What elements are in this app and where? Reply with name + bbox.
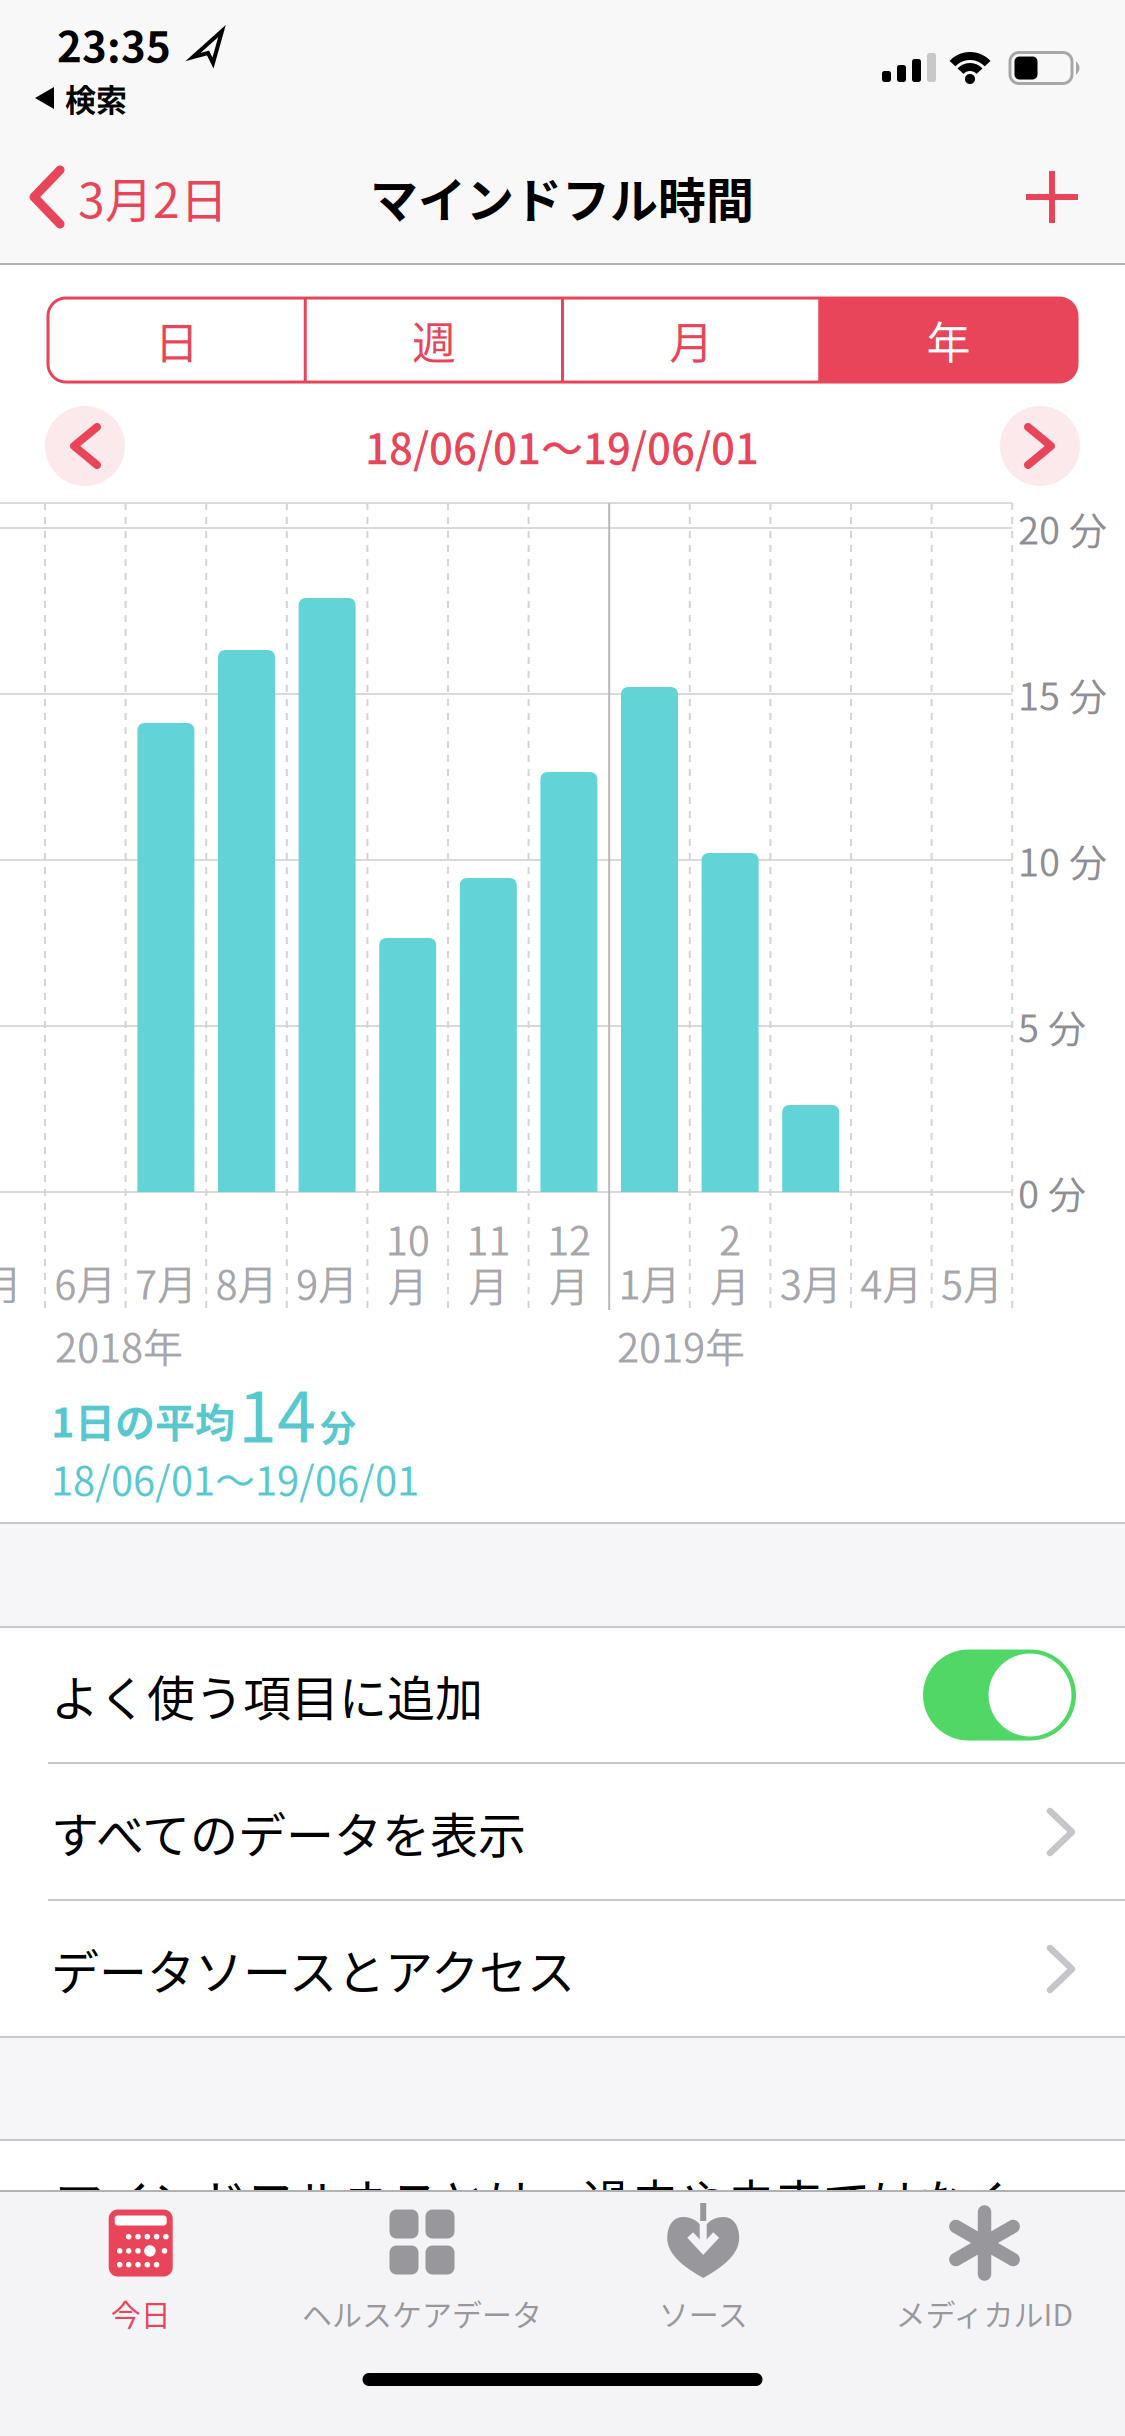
staticText: 11 bbox=[466, 1209, 510, 1267]
button[interactable]: ソース bbox=[563, 2190, 844, 2342]
staticText: 2 bbox=[719, 1209, 741, 1267]
staticText: 月 bbox=[388, 1255, 428, 1313]
button[interactable]: 検索 bbox=[30, 84, 130, 118]
staticText: 週 bbox=[412, 308, 456, 372]
button[interactable] bbox=[45, 406, 125, 486]
staticText: 7月 bbox=[135, 1253, 197, 1311]
staticText: ソース bbox=[659, 2291, 748, 2335]
staticText: 検索 bbox=[65, 76, 127, 120]
button[interactable] bbox=[1000, 406, 1080, 486]
staticText: 月 bbox=[549, 1255, 589, 1313]
staticText: 今日 bbox=[111, 2291, 171, 2335]
staticText: 12 bbox=[547, 1209, 591, 1267]
staticText: よく使う項目に追加 bbox=[51, 1660, 483, 1730]
staticText: 0 分 bbox=[1018, 1164, 1086, 1219]
staticText: 2018年 bbox=[55, 1316, 183, 1374]
staticText: 年 bbox=[926, 308, 970, 372]
staticText: 月 bbox=[468, 1255, 508, 1313]
staticText: 月 bbox=[710, 1255, 750, 1313]
staticText: 3月 bbox=[780, 1253, 842, 1311]
staticText: 8月 bbox=[215, 1253, 277, 1311]
staticText: すべてのデータを表示 bbox=[51, 1797, 526, 1867]
staticText: 1月 bbox=[618, 1253, 680, 1311]
staticText: データソースとアクセス bbox=[51, 1934, 575, 2004]
staticText: 18/06/01〜19/06/01 bbox=[365, 416, 759, 476]
staticText: 9月 bbox=[296, 1253, 358, 1311]
staticText: 3月2日 bbox=[78, 162, 228, 232]
staticText: 5 分 bbox=[1018, 998, 1086, 1053]
button[interactable]: メディカルID bbox=[844, 2190, 1125, 2342]
staticText: ヘルスケアデータ bbox=[302, 2291, 542, 2335]
staticText: メディカルID bbox=[895, 2291, 1073, 2335]
button[interactable]: 今日 bbox=[0, 2190, 281, 2342]
staticText: 6月 bbox=[54, 1253, 116, 1311]
staticText: 月 bbox=[0, 1253, 22, 1311]
staticText: 4月 bbox=[860, 1253, 922, 1311]
staticText: 月 bbox=[669, 308, 713, 372]
staticText: マインドフルネスとは、過去や未来ではなく bbox=[55, 2164, 1015, 2234]
staticText: 15 分 bbox=[1018, 666, 1107, 721]
staticText: 20 分 bbox=[1018, 500, 1107, 555]
button[interactable] bbox=[923, 1649, 1076, 1740]
button[interactable]: 3月2日 bbox=[24, 167, 244, 229]
button[interactable]: 年 bbox=[820, 298, 1077, 382]
staticText: 2019年 bbox=[617, 1316, 745, 1374]
staticText: マインドフル時間 bbox=[370, 162, 754, 232]
button[interactable] bbox=[1026, 171, 1078, 223]
button[interactable]: ヘルスケアデータ bbox=[281, 2190, 562, 2342]
staticText: 23:35 bbox=[57, 14, 171, 74]
button[interactable]: すべてのデータを表示 bbox=[0, 1764, 1125, 1899]
staticText: 10 分 bbox=[1018, 832, 1107, 887]
button[interactable]: 月 bbox=[562, 298, 820, 382]
button[interactable]: 週 bbox=[305, 298, 562, 382]
staticText: 1日の平均 bbox=[51, 1391, 235, 1449]
button[interactable]: データソースとアクセス bbox=[0, 1901, 1125, 2036]
staticText: 18/06/01〜19/06/01 bbox=[51, 1449, 419, 1507]
staticText: 日 bbox=[155, 308, 199, 372]
staticText: 分 bbox=[320, 1400, 356, 1452]
staticText: 10 bbox=[386, 1209, 430, 1267]
button[interactable]: 日 bbox=[48, 298, 305, 382]
staticText: 14 bbox=[238, 1361, 316, 1463]
staticText: 5月 bbox=[941, 1253, 1003, 1311]
